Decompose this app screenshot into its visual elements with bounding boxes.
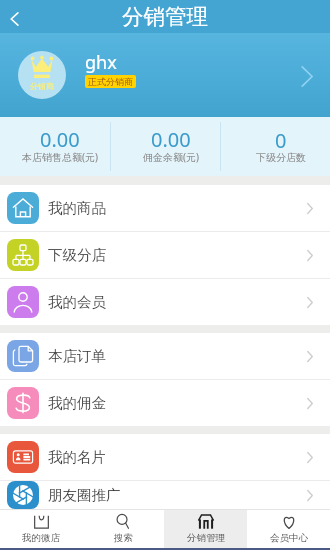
button[interactable]: 下级分店	[0, 232, 330, 278]
button[interactable]: 我的商品	[0, 185, 330, 231]
staticText: 我的微店	[22, 532, 60, 544]
button[interactable]: 朋友圈推广	[0, 481, 330, 509]
staticText: 我的佣金	[48, 394, 106, 412]
button[interactable]: 我的佣金	[0, 380, 330, 426]
staticText: 会员中心	[270, 532, 308, 544]
button[interactable]: 分销管理	[164, 510, 247, 548]
button[interactable]: Back	[0, 0, 33, 33]
staticText: 0.00	[40, 126, 80, 153]
button[interactable]: 我的会员	[0, 279, 330, 325]
button[interactable]: 分销商	[0, 33, 330, 117]
button[interactable]: 0.00	[0, 117, 110, 176]
button[interactable]: 会员中心	[247, 510, 330, 548]
staticText: 0.00	[151, 126, 191, 153]
button[interactable]: 本店订单	[0, 333, 330, 379]
staticText: 搜索	[114, 532, 133, 544]
button[interactable]: 0	[221, 117, 330, 176]
staticText: 分销管理	[187, 532, 225, 544]
staticText: 我的名片	[48, 448, 106, 466]
staticText: 我的商品	[48, 199, 106, 217]
staticText: 下级分店数	[256, 151, 306, 164]
button[interactable]: 搜索	[82, 510, 164, 548]
staticText: 我的会员	[48, 293, 106, 311]
staticText: 佣金余额(元)	[143, 150, 199, 164]
staticText: 正式分销商	[88, 76, 133, 87]
staticText: 分销管理	[122, 3, 208, 30]
button[interactable]: 我的微店	[0, 510, 82, 548]
staticText: 本店销售总额(元)	[22, 150, 98, 164]
staticText: 0	[275, 127, 287, 154]
staticText: 下级分店	[48, 246, 106, 264]
button[interactable]: 0.00	[111, 117, 220, 176]
staticText: 本店订单	[48, 347, 106, 365]
staticText: 分销商	[30, 81, 54, 91]
button[interactable]: 我的名片	[0, 434, 330, 480]
staticText: 朋友圈推广	[48, 486, 121, 504]
staticText: ghx	[85, 50, 117, 75]
